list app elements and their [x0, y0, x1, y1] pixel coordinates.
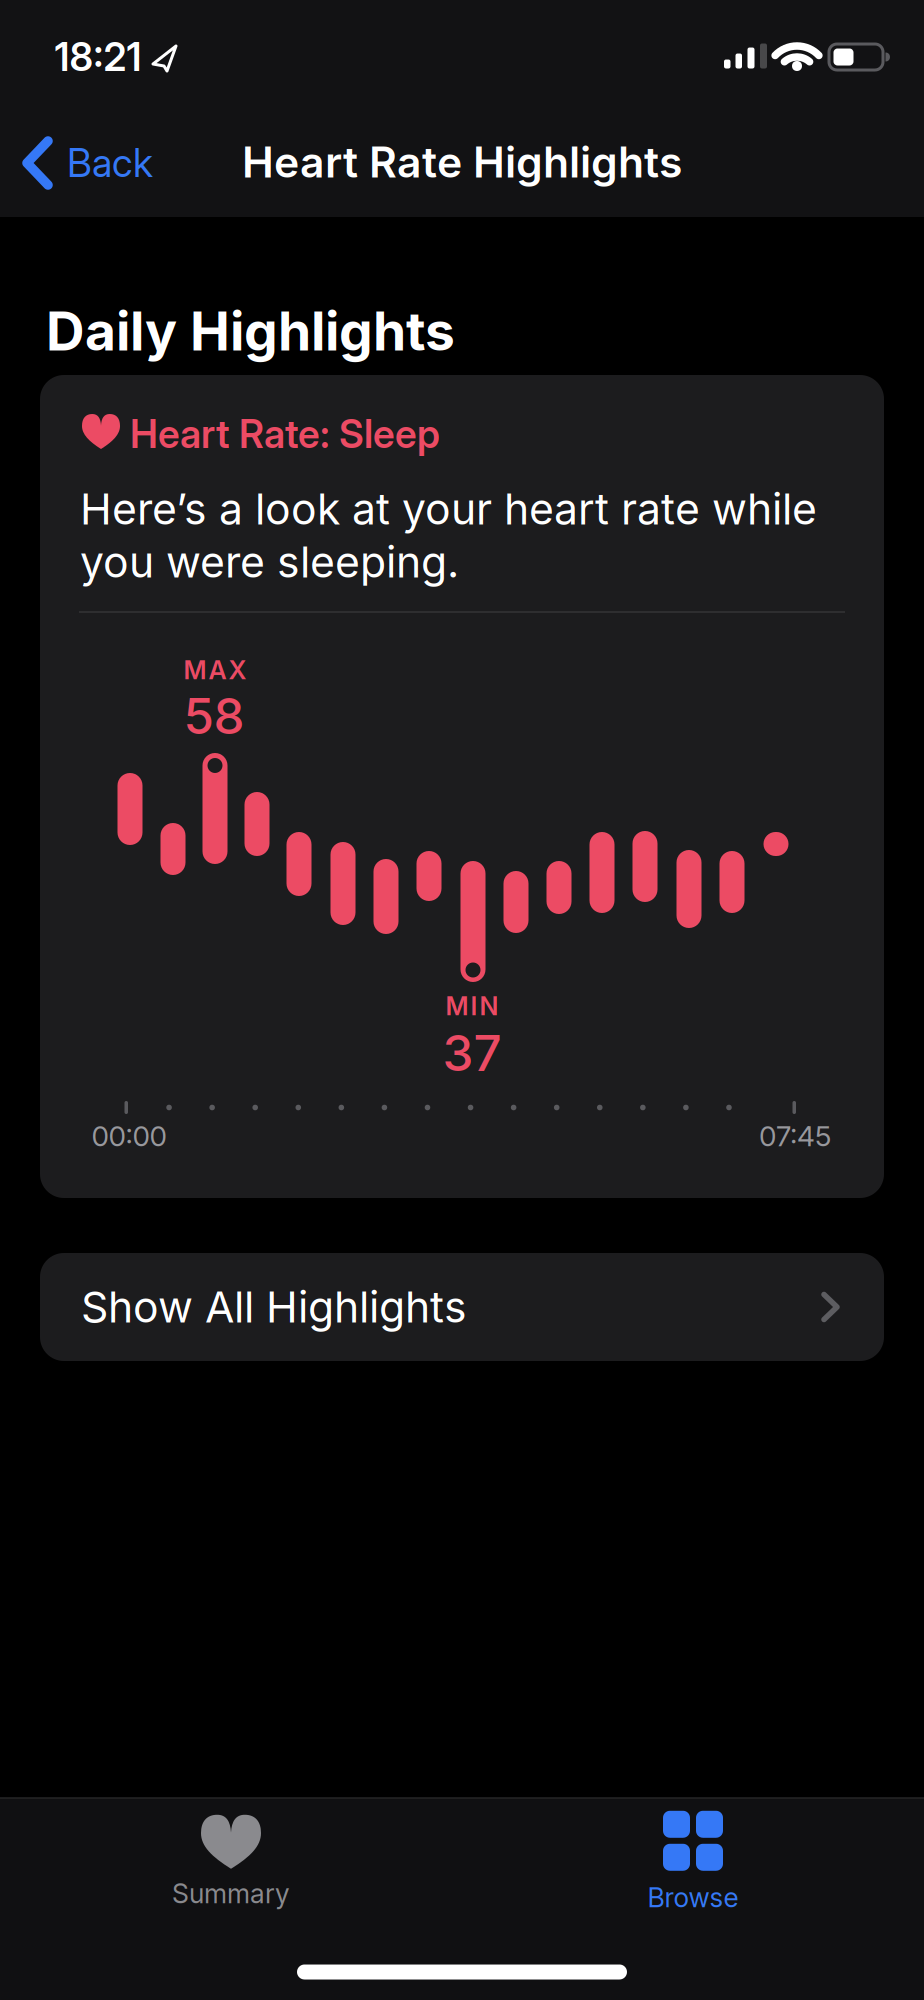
staticText: 07:45: [759, 1119, 831, 1152]
staticText: MIN: [445, 991, 498, 1021]
staticText: Daily Highlights: [46, 299, 455, 362]
staticText: Heart Rate: Sleep: [130, 411, 440, 457]
staticText: Browse: [647, 1882, 738, 1913]
staticText: Back: [67, 140, 153, 186]
button[interactable]: Show All Highlights: [40, 1253, 884, 1361]
staticText: you were sleeping.: [80, 537, 459, 587]
button[interactable]: Browse: [553, 1792, 833, 1932]
staticText: Here’s a look at your heart rate while: [80, 484, 817, 534]
staticText: MAX: [183, 655, 246, 685]
staticText: Heart Rate Highlights: [242, 137, 682, 187]
staticText: Summary: [172, 1878, 290, 1909]
button[interactable]: Summary: [91, 1792, 371, 1932]
staticText: 58: [183, 687, 244, 745]
staticText: 37: [442, 1024, 501, 1082]
staticText: 18:21: [54, 34, 141, 80]
staticText: Show All Highlights: [81, 1282, 467, 1332]
button[interactable]: Back: [21, 121, 261, 205]
staticText: 00:00: [91, 1119, 166, 1152]
